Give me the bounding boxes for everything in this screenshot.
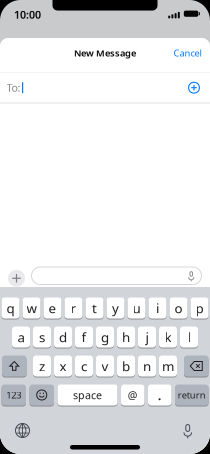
- button[interactable]: i: [148, 297, 166, 318]
- button[interactable]: .: [148, 384, 171, 405]
- button[interactable]: u: [127, 297, 145, 318]
- staticText: b: [122, 357, 130, 375]
- button[interactable]: g: [96, 326, 114, 347]
- staticText: u: [132, 299, 140, 317]
- staticText: @: [128, 388, 138, 402]
- staticText: e: [48, 299, 56, 317]
- button[interactable]: n: [138, 355, 156, 376]
- staticText: h: [122, 328, 130, 346]
- button[interactable]: j: [138, 326, 156, 347]
- staticText: w: [26, 299, 36, 317]
- button[interactable]: Message field: [31, 266, 202, 285]
- staticText: o: [174, 299, 182, 317]
- staticText: i: [156, 299, 159, 317]
- button[interactable]: @: [121, 384, 144, 405]
- button[interactable]: Dictation: [182, 424, 210, 437]
- staticText: 10:00: [14, 7, 41, 22]
- button[interactable]: k: [159, 326, 177, 347]
- button[interactable]: b: [117, 355, 135, 376]
- button[interactable]: l: [180, 326, 198, 347]
- staticText: g: [101, 328, 109, 346]
- button[interactable]: return: [175, 384, 208, 405]
- button[interactable]: Delete: [184, 355, 208, 376]
- button[interactable]: a: [12, 326, 30, 347]
- staticText: n: [143, 357, 151, 375]
- button[interactable]: f: [75, 326, 93, 347]
- staticText: j: [145, 328, 148, 346]
- staticText: To:: [6, 81, 20, 95]
- button[interactable]: t: [85, 297, 103, 318]
- button[interactable]: p: [190, 297, 208, 318]
- button[interactable]: r: [64, 297, 82, 318]
- staticText: a: [17, 328, 24, 346]
- button[interactable]: Apps: [8, 267, 25, 284]
- button[interactable]: m: [159, 355, 177, 376]
- staticText: p: [195, 299, 203, 317]
- staticText: t: [92, 299, 97, 317]
- staticText: d: [59, 328, 67, 346]
- staticText: .: [158, 386, 162, 404]
- button[interactable]: Shift: [2, 355, 26, 376]
- staticText: l: [187, 328, 190, 346]
- staticText: space: [73, 388, 102, 402]
- button[interactable]: Next keyboard: [0, 423, 30, 438]
- button[interactable]: x: [54, 355, 72, 376]
- button[interactable]: q: [1, 297, 19, 318]
- button[interactable]: Emoji: [29, 384, 54, 405]
- button[interactable]: c: [75, 355, 93, 376]
- button[interactable]: Add Contact: [188, 82, 210, 94]
- staticText: r: [70, 299, 76, 317]
- staticText: 123: [6, 389, 21, 401]
- staticText: return: [178, 389, 206, 401]
- button[interactable]: s: [33, 326, 51, 347]
- staticText: k: [164, 328, 171, 346]
- button[interactable]: Cancel: [173, 47, 210, 59]
- button[interactable]: Numbers: [1, 384, 26, 405]
- button[interactable]: h: [117, 326, 135, 347]
- staticText: s: [39, 328, 45, 346]
- staticText: New Message: [74, 47, 136, 59]
- button[interactable]: d: [54, 326, 72, 347]
- staticText: q: [6, 299, 14, 317]
- staticText: m: [162, 357, 174, 375]
- staticText: c: [81, 357, 87, 375]
- button[interactable]: space: [57, 384, 117, 405]
- button[interactable]: z: [33, 355, 51, 376]
- staticText: v: [101, 357, 108, 375]
- button[interactable]: o: [169, 297, 187, 318]
- staticText: z: [39, 357, 45, 375]
- staticText: f: [81, 328, 86, 346]
- staticText: x: [59, 357, 66, 375]
- button[interactable]: e: [43, 297, 61, 318]
- staticText: y: [112, 299, 119, 317]
- button[interactable]: v: [96, 355, 114, 376]
- staticText: Cancel: [173, 47, 201, 59]
- button[interactable]: w: [22, 297, 40, 318]
- button[interactable]: y: [106, 297, 124, 318]
